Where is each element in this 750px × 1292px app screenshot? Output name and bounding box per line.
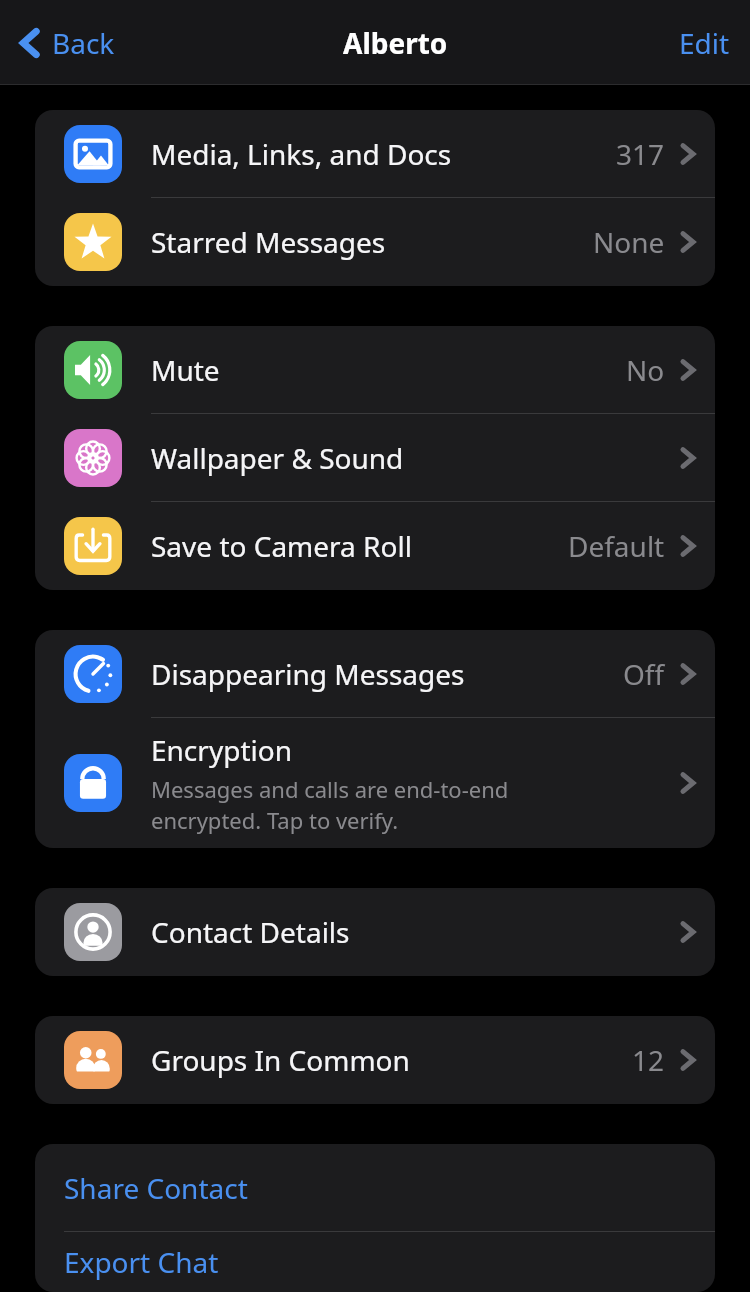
staticText: Disappearing Messages [151, 655, 465, 693]
staticText: Groups In Common [151, 1041, 410, 1079]
staticText: 12 [632, 1041, 665, 1079]
button[interactable]: Starred Messages [35, 198, 715, 286]
button[interactable]: Export Chat [35, 1232, 715, 1292]
staticText: Wallpaper & Sound [151, 439, 404, 477]
other: Save to Camera Roll [64, 517, 122, 575]
other: Starred Messages [64, 213, 122, 271]
staticText: Mute [151, 351, 220, 389]
staticText: None [593, 223, 665, 261]
button[interactable]: Mute [35, 326, 715, 414]
button[interactable]: Groups In Common [35, 1016, 715, 1104]
staticText: Edit [679, 24, 730, 62]
staticText: Share Contact [64, 1169, 248, 1207]
button[interactable]: Save to Camera Roll [35, 502, 715, 590]
button[interactable]: Encryption [35, 718, 715, 848]
staticText: Export Chat [64, 1243, 219, 1281]
staticText: Off [623, 655, 665, 693]
button[interactable]: Share Contact [35, 1144, 715, 1232]
staticText: Alberto [343, 24, 448, 62]
staticText: Contact Details [151, 913, 350, 951]
other: Groups In Common [64, 1031, 122, 1089]
button[interactable]: Wallpaper and Sound [35, 414, 715, 502]
staticText: Encryption [151, 731, 292, 769]
other: Disappearing Messages [64, 645, 122, 703]
staticText: 317 [616, 135, 665, 173]
other: Mute [64, 341, 122, 399]
staticText: Back [52, 24, 115, 62]
button[interactable]: Contact Details [35, 888, 715, 976]
button[interactable]: Disappearing Messages [35, 630, 715, 718]
staticText: No [626, 351, 665, 389]
other: Contact Details [64, 903, 122, 961]
other: Encryption [64, 754, 122, 812]
other: Wallpaper and Sound [64, 429, 122, 487]
staticText: Messages and calls are end-to-end encryp… [151, 774, 509, 836]
staticText: Starred Messages [151, 223, 386, 261]
button[interactable]: Media, Links and Docs [35, 110, 715, 198]
staticText: Media, Links, and Docs [151, 135, 452, 173]
staticText: Save to Camera Roll [151, 527, 412, 565]
button[interactable]: Edit [671, 14, 738, 72]
staticText: Default [568, 527, 665, 565]
button[interactable]: Back [12, 14, 121, 72]
other: Media, Links and Docs [64, 125, 122, 183]
